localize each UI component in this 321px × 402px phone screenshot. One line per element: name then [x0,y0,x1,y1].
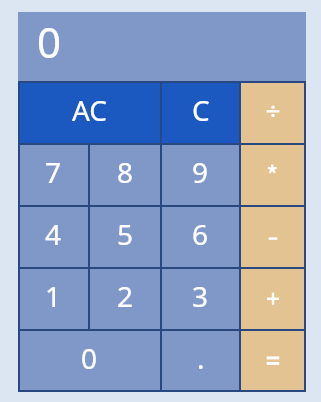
staticText: 8 [117,153,134,191]
button[interactable]: 9 [161,144,240,206]
button[interactable]: 6 [161,206,240,268]
staticText: 5 [117,215,134,253]
button[interactable]: AC [18,81,161,144]
staticText: 2 [117,277,134,315]
staticText: 9 [192,153,209,191]
staticText: AC [72,91,108,129]
staticText: 0 [37,13,62,70]
button[interactable]: 4 [18,206,89,268]
staticText: . [197,339,205,377]
button[interactable] [240,268,306,330]
button[interactable]: C [161,81,240,144]
staticText: 4 [45,215,62,253]
staticText: 7 [45,153,62,191]
button[interactable]: 0 [18,330,161,392]
button[interactable]: . [161,330,240,392]
button[interactable] [240,81,306,144]
staticText: 6 [192,215,209,253]
staticText: C [192,91,210,129]
button[interactable] [240,206,306,268]
staticText: 0 [81,339,98,377]
button[interactable]: 5 [89,206,161,268]
button[interactable] [240,144,306,206]
button[interactable]: 7 [18,144,89,206]
button[interactable]: 3 [161,268,240,330]
button[interactable] [240,330,306,392]
staticText: 3 [192,277,209,315]
staticText: 1 [45,277,62,315]
button[interactable]: 2 [89,268,161,330]
button[interactable]: 1 [18,268,89,330]
button[interactable]: 8 [89,144,161,206]
